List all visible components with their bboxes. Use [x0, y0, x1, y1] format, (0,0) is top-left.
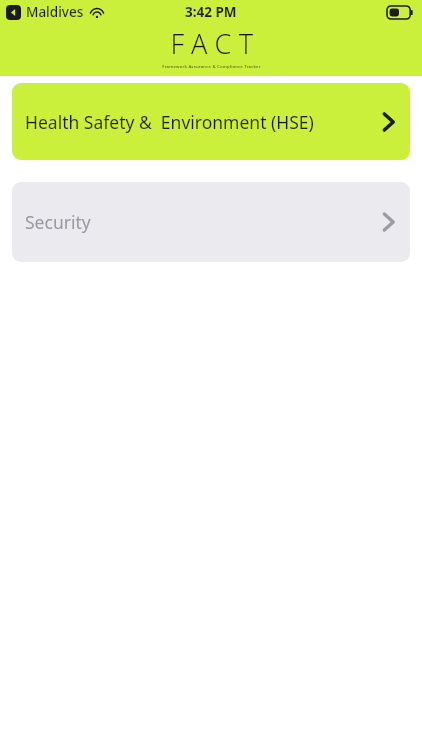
staticText: FACT — [170, 25, 261, 62]
staticText: Security — [25, 210, 91, 234]
staticText: Health Safety & Environment (HSE) — [25, 110, 314, 134]
button[interactable]: Health Safety & Environment (HSE) — [12, 83, 410, 160]
staticText: Maldives — [26, 3, 84, 21]
staticText: Framework Assurance & Compliance Tracker — [162, 63, 261, 69]
button[interactable]: Back to previous app — [6, 5, 21, 20]
button[interactable]: Security — [12, 182, 410, 262]
staticText: 3:42 PM — [185, 3, 237, 21]
